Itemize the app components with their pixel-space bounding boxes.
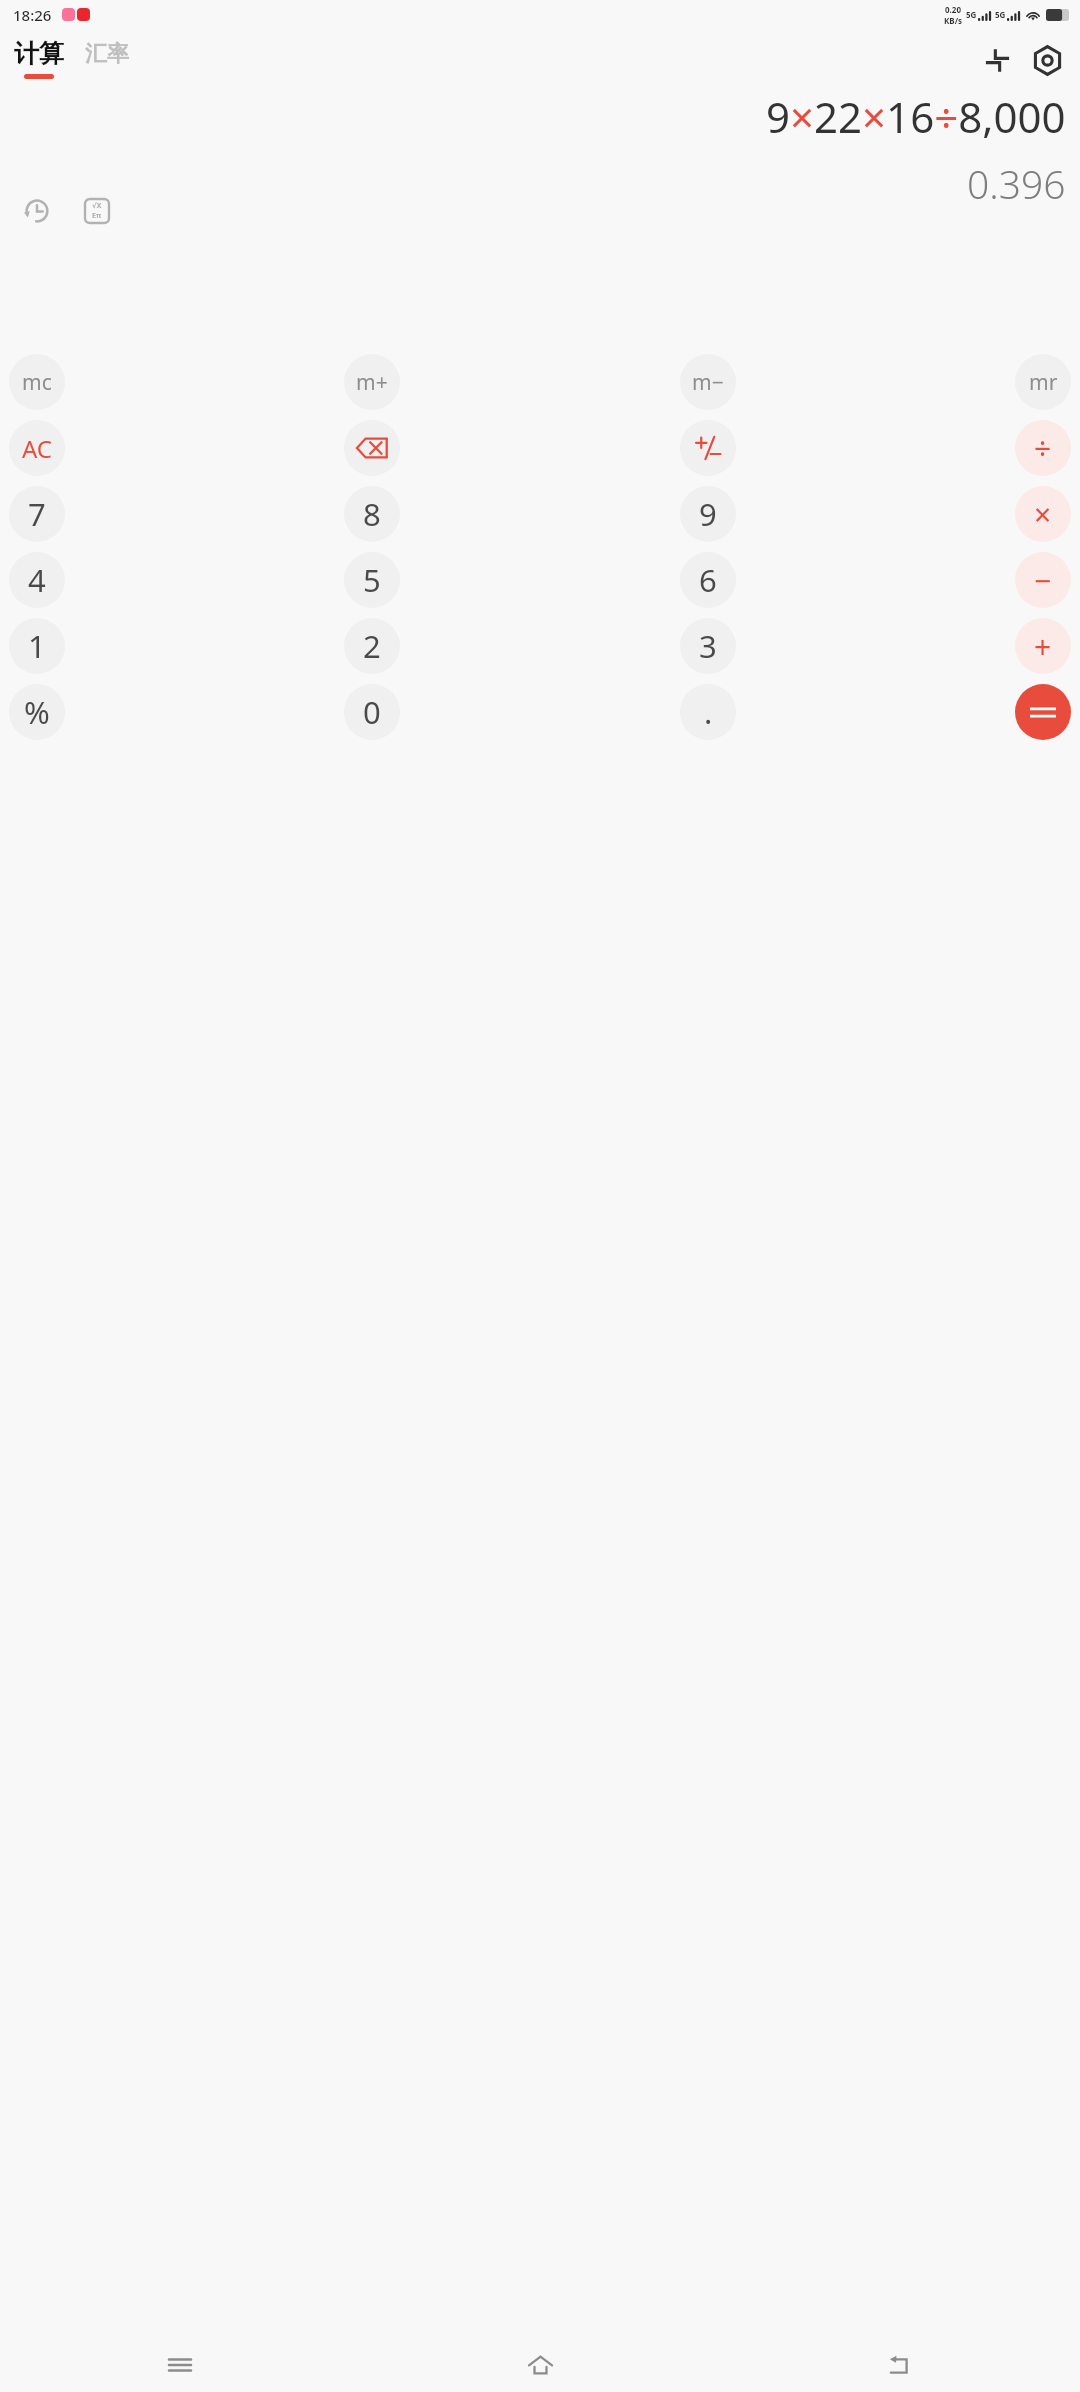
button[interactable]: m− [680,354,736,410]
staticText: 0.396 [967,157,1066,210]
staticText: KB/s [944,15,962,26]
staticText: 9 [699,493,717,535]
staticText: 2 [363,625,381,667]
button[interactable]: − [1015,552,1071,608]
button[interactable]: 8 [344,486,400,542]
button[interactable]: Backspace [344,420,400,476]
staticText: 1 [28,625,46,667]
staticText: 计算 [14,38,64,69]
staticText: Eπ [92,211,102,221]
button[interactable]: % [9,684,65,740]
button[interactable]: Settings [1025,38,1069,82]
button[interactable]: Recent apps [0,2338,360,2392]
button[interactable] [1015,684,1071,740]
button[interactable]: 1 [9,618,65,674]
button[interactable]: 3 [680,618,736,674]
staticText: 5 [363,559,381,601]
staticText: 6 [699,559,717,601]
staticText: 5G [995,9,1006,20]
button[interactable]: m+ [344,354,400,410]
button[interactable]: 计算 [14,38,64,79]
button[interactable]: Toggle sign [680,420,736,476]
button[interactable]: History [15,189,59,233]
staticText: m− [692,368,724,397]
staticText: 18:26 [13,5,52,25]
staticText: √X [92,201,102,211]
staticText: 5G [966,9,977,20]
button[interactable]: 2 [344,618,400,674]
button[interactable]: 4 [9,552,65,608]
button[interactable]: 7 [9,486,65,542]
staticText: AC [22,432,53,465]
button[interactable]: ÷ [1015,420,1071,476]
button[interactable]: Home [360,2338,720,2392]
staticText: % [24,691,50,733]
staticText: − [1034,560,1052,601]
button[interactable]: 5 [344,552,400,608]
staticText: 4 [28,559,46,601]
staticText: m+ [356,368,388,397]
button[interactable]: mr [1015,354,1071,410]
staticText: mc [22,368,52,397]
button[interactable]: 9 [680,486,736,542]
staticText: ÷ [1034,428,1052,469]
staticText: 汇率 [85,40,129,68]
staticText: mr [1029,368,1058,397]
staticText: 8 [363,493,381,535]
staticText: 3 [699,625,717,667]
button[interactable]: 汇率 [85,38,129,68]
button[interactable]: + [1015,618,1071,674]
staticText: 0.20 [945,4,961,15]
staticText: × [1034,494,1052,535]
button[interactable]: Back [720,2338,1080,2392]
button[interactable]: Collapse [975,38,1019,82]
staticText: 7 [28,493,46,535]
staticText: + [1034,626,1052,667]
staticText: . [704,691,713,733]
button[interactable]: 0 [344,684,400,740]
button[interactable]: . [680,684,736,740]
button[interactable]: mc [9,354,65,410]
button[interactable]: AC [9,420,65,476]
button[interactable]: × [1015,486,1071,542]
button[interactable]: 6 [680,552,736,608]
staticText: 9×22×16÷8,000 [766,88,1066,145]
button[interactable]: Scientific mode [75,189,119,233]
staticText: 0 [363,691,381,733]
